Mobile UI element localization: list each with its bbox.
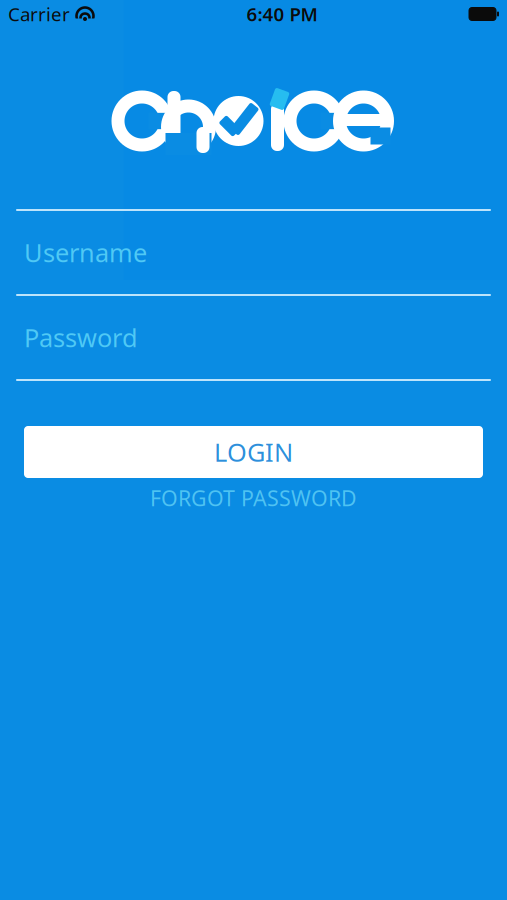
staticText: FORGOT PASSWORD (150, 484, 357, 512)
button[interactable]: FORGOT PASSWORD (24, 478, 483, 518)
button[interactable]: Password (16, 296, 491, 379)
staticText: Username (24, 236, 147, 269)
staticText: Carrier (8, 2, 70, 26)
staticText: 6:40 PM (246, 2, 317, 26)
staticText: LOGIN (214, 435, 293, 469)
button[interactable]: Username (16, 211, 491, 294)
staticText: Password (24, 321, 138, 354)
button[interactable]: LOGIN (24, 426, 483, 478)
